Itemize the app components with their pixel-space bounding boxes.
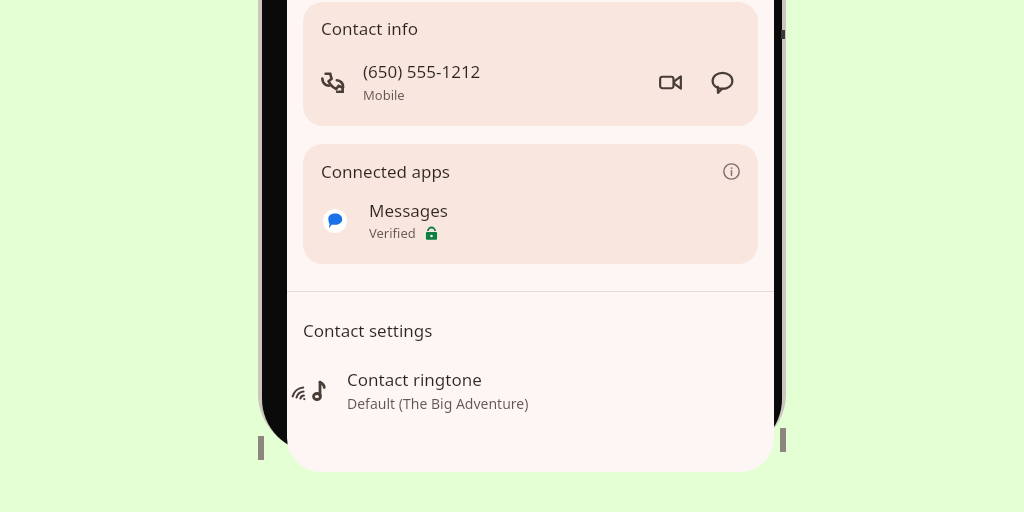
- staticText: Connected apps: [321, 160, 717, 183]
- staticText: (650) 555-1212: [363, 60, 481, 83]
- button[interactable]: About connected apps: [717, 157, 745, 185]
- staticText: Contact settings: [303, 319, 433, 342]
- staticText: Messages: [369, 199, 449, 222]
- button[interactable]: Video call: [650, 62, 690, 102]
- staticText: Default (The Big Adventure): [347, 394, 529, 413]
- staticText: Mobile: [363, 86, 405, 104]
- staticText: Contact info: [321, 17, 418, 40]
- staticText: Contact ringtone: [347, 368, 482, 391]
- staticText: Verified: [369, 224, 416, 242]
- button[interactable]: Contact ringtone: [287, 342, 774, 433]
- button[interactable]: (650) 555-1212: [303, 40, 758, 126]
- button[interactable]: Send message: [702, 62, 742, 102]
- button[interactable]: Messages: [303, 185, 758, 264]
